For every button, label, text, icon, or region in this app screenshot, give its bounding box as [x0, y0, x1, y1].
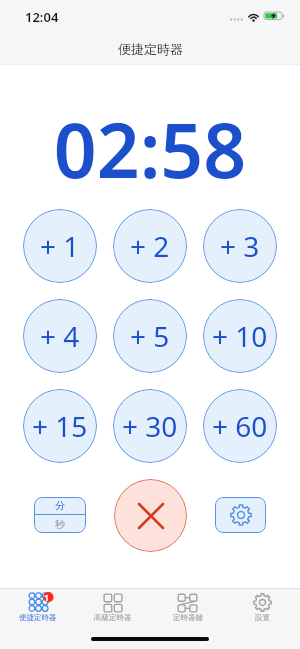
button[interactable]: 1	[0, 589, 75, 622]
button[interactable]: + 1	[23, 209, 97, 283]
button[interactable]: + 3	[203, 209, 277, 283]
button[interactable]: 高級定時器	[75, 589, 150, 622]
button[interactable]: + 60	[203, 389, 277, 463]
staticText: + 60	[212, 407, 268, 445]
staticText: 便捷定時器	[19, 613, 57, 622]
staticText: 1	[44, 592, 49, 602]
button[interactable]: + 5	[113, 299, 187, 373]
staticText: 秒	[55, 518, 65, 531]
button[interactable]: + 30	[113, 389, 187, 463]
staticText: 設置	[255, 613, 270, 622]
staticText: + 2	[130, 227, 170, 265]
staticText: 高級定時器	[94, 613, 132, 622]
button[interactable]: 分	[34, 497, 86, 533]
button[interactable]: + 2	[113, 209, 187, 283]
button[interactable]: + 4	[23, 299, 97, 373]
button[interactable]: Settings	[215, 497, 266, 533]
staticText: + 3	[220, 227, 260, 265]
button[interactable]: + 15	[23, 389, 97, 463]
staticText: 12:04	[25, 8, 59, 26]
staticText: + 10	[212, 317, 268, 355]
staticText: 便捷定時器	[118, 41, 183, 57]
staticText: + 30	[122, 407, 178, 445]
staticText: + 4	[40, 317, 80, 355]
button[interactable]: 定時器鏈	[150, 589, 225, 622]
staticText: + 5	[130, 317, 170, 355]
staticText: + 15	[32, 407, 88, 445]
button[interactable]: Reset timer	[114, 479, 187, 552]
staticText: 分	[55, 499, 65, 512]
staticText: 定時器鏈	[173, 613, 203, 622]
staticText: + 1	[40, 227, 80, 265]
staticText: 02:58	[0, 98, 300, 200]
button[interactable]: + 10	[203, 299, 277, 373]
button[interactable]: 設置	[225, 589, 300, 622]
